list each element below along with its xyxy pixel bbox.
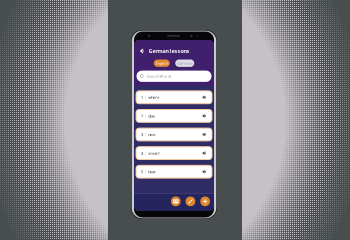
button[interactable]: 5	[136, 165, 212, 178]
button[interactable]: Flashcards	[171, 196, 181, 206]
staticText: |	[145, 150, 147, 156]
button[interactable]: German	[175, 59, 194, 67]
staticText: |	[145, 95, 147, 100]
staticText: Search Words	[146, 74, 171, 79]
staticText: |	[145, 132, 147, 137]
button[interactable]: 1	[136, 91, 212, 104]
button[interactable]: 4	[136, 147, 212, 159]
staticText: |	[145, 169, 147, 174]
staticText: |	[145, 113, 147, 118]
staticText: German	[177, 60, 192, 66]
staticText: dog	[148, 113, 154, 118]
button[interactable]: Search Words	[136, 71, 211, 82]
button[interactable]: English	[154, 59, 170, 67]
staticText: smart	[148, 150, 159, 156]
button[interactable]: Add word	[200, 196, 210, 206]
staticText: 4	[141, 150, 143, 156]
button[interactable]: 3	[136, 128, 212, 141]
button[interactable]: 2	[136, 109, 212, 122]
staticText: 3	[141, 132, 143, 137]
button[interactable]: German lessons	[134, 44, 214, 58]
staticText: English	[156, 60, 168, 66]
staticText: nice	[148, 132, 155, 137]
staticText: 2	[141, 113, 143, 118]
staticText: German lessons	[148, 47, 189, 55]
staticText: bear	[148, 169, 156, 174]
button[interactable]: Edit	[186, 196, 195, 206]
staticText: 1	[141, 95, 143, 100]
staticText: where	[148, 95, 159, 100]
staticText: 5	[141, 169, 143, 174]
